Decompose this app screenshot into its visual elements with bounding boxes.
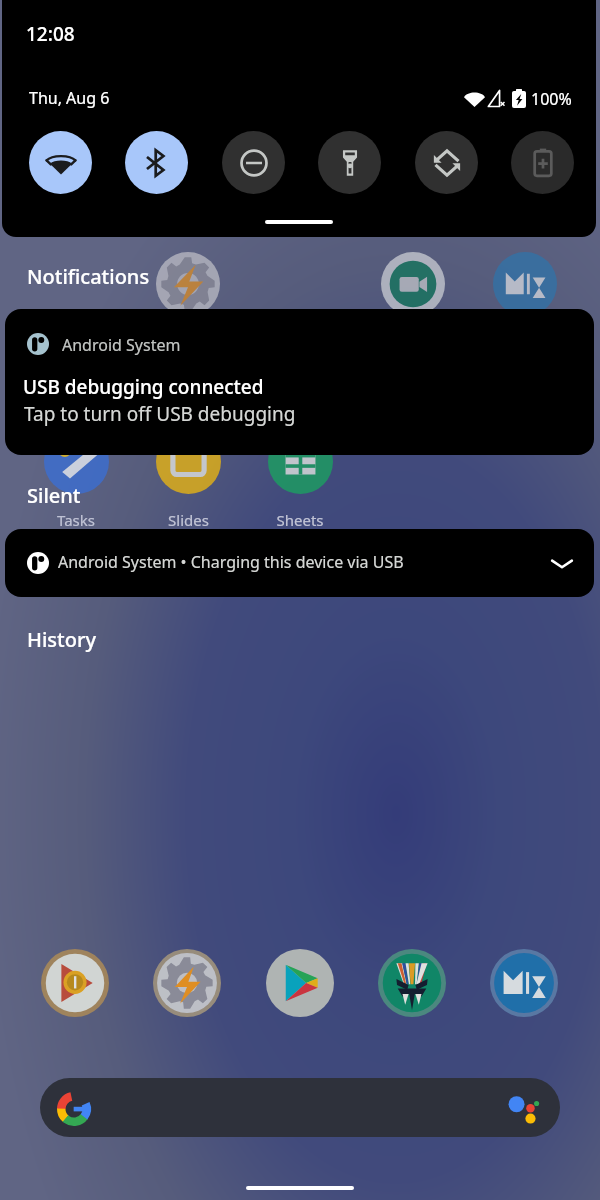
button[interactable]: Quick setting: [222, 131, 285, 194]
button[interactable]: Quick setting: [415, 131, 478, 194]
button[interactable]: App: [156, 429, 221, 494]
button[interactable]: App: [41, 949, 109, 1017]
staticText: USB debugging connected: [23, 374, 264, 400]
button[interactable]: App: [266, 949, 334, 1017]
staticText: Sheets: [276, 510, 324, 530]
staticText: Android System: [62, 334, 181, 356]
staticText: Notifications: [27, 263, 150, 290]
staticText: Tap to turn off USB debugging: [24, 401, 296, 427]
button[interactable]: Android System: [5, 309, 594, 455]
other: Expand: [547, 551, 577, 575]
button[interactable]: Android System • Charging this device vi…: [5, 529, 594, 597]
button[interactable]: App: [156, 252, 220, 316]
button[interactable]: App: [493, 252, 557, 316]
button[interactable]: App: [381, 252, 445, 316]
button[interactable]: App: [153, 949, 221, 1017]
staticText: Android System • Charging this device vi…: [58, 551, 404, 573]
staticText: 12:08: [26, 21, 75, 47]
button[interactable]: Search: [40, 1078, 560, 1137]
button[interactable]: App: [378, 949, 446, 1017]
staticText: Slides: [168, 510, 209, 530]
staticText: Silent: [27, 482, 81, 509]
staticText: Thu, Aug 6: [29, 87, 110, 109]
staticText: Tasks: [57, 510, 95, 530]
button[interactable]: Quick setting: [125, 131, 188, 194]
button[interactable]: Quick setting: [29, 131, 92, 194]
button[interactable]: Quick setting: [511, 131, 574, 194]
button[interactable]: Quick setting: [318, 131, 381, 194]
button[interactable]: App: [44, 429, 109, 494]
button[interactable]: App: [268, 429, 333, 494]
button[interactable]: App: [490, 949, 558, 1017]
staticText: History: [27, 626, 96, 653]
staticText: 100%: [531, 88, 572, 110]
